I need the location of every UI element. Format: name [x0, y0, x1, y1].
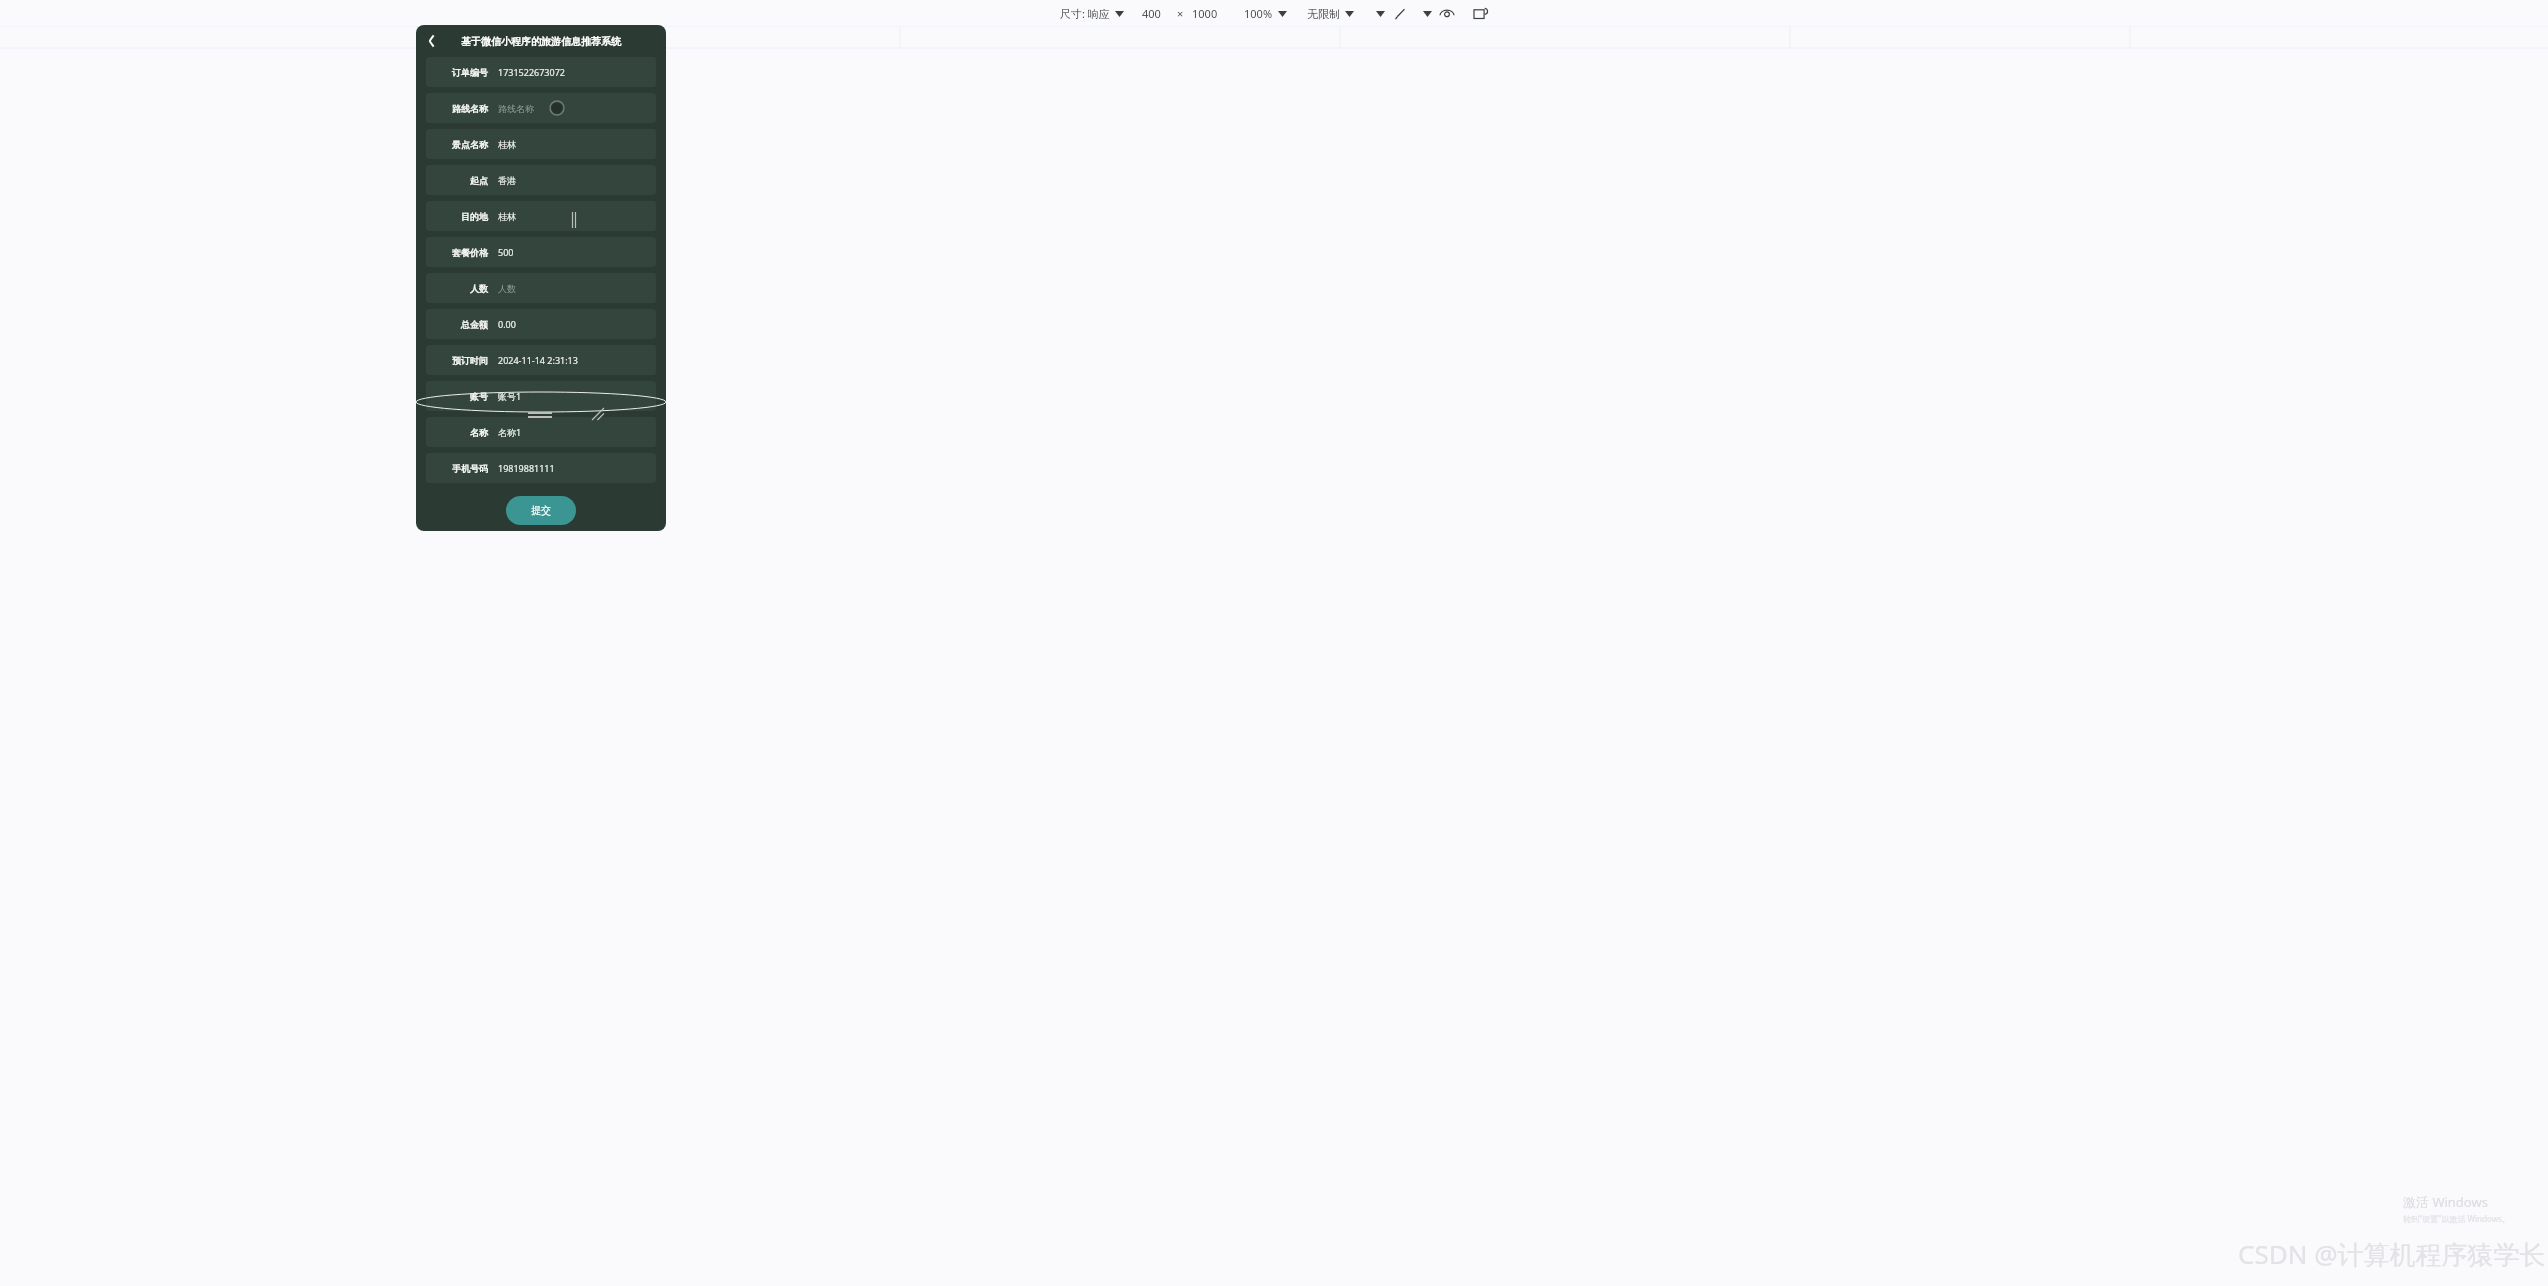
button[interactable]: 路线名称 — [426, 93, 656, 123]
staticText: 500 — [498, 246, 514, 258]
button[interactable]: 提交 — [506, 496, 576, 525]
staticText: 桂林 — [498, 139, 516, 150]
staticText: 1000 — [1192, 6, 1218, 21]
staticText: 0.00 — [498, 318, 516, 330]
button[interactable]: 名称 — [426, 417, 656, 447]
staticText: 目的地 — [430, 211, 488, 222]
staticText: 19819881111 — [498, 462, 555, 474]
staticText: 路线名称 — [430, 103, 488, 114]
button[interactable]: 套餐价格 — [426, 237, 656, 267]
staticText: 总金额 — [430, 319, 488, 330]
staticText: 2024-11-14 2:31:13 — [498, 354, 578, 366]
staticText: 预订时间 — [430, 355, 488, 366]
staticText: 转到"设置"以激活 Windows。 — [2403, 1213, 2510, 1224]
staticText: 手机号码 — [430, 463, 488, 474]
button[interactable]: 手机号码 — [426, 453, 656, 483]
button[interactable]: 总金额 — [426, 309, 656, 339]
staticText: 桂林 — [498, 211, 516, 222]
staticText: 激活 Windows — [2403, 1193, 2488, 1211]
button[interactable]: Back — [422, 31, 442, 51]
button[interactable]: 账号 — [426, 381, 656, 411]
button[interactable]: 景点名称 — [426, 129, 656, 159]
staticText: 名称 — [430, 427, 488, 438]
staticText: 账号 — [430, 391, 488, 402]
staticText: 香港 — [498, 175, 516, 186]
staticText: CSDN @计算机程序猿学长 — [2238, 1236, 2546, 1272]
staticText: 无限制 — [1307, 7, 1340, 21]
button[interactable]: 目的地 — [426, 201, 656, 231]
staticText: 账号1 — [498, 390, 522, 402]
staticText: 提交 — [531, 504, 551, 517]
staticText: 1731522673072 — [498, 66, 565, 78]
staticText: 人数 — [498, 283, 516, 294]
staticText: 人数 — [430, 283, 488, 294]
button[interactable]: 人数 — [426, 273, 656, 303]
staticText: 套餐价格 — [430, 247, 488, 258]
button[interactable]: 预订时间 — [426, 345, 656, 375]
staticText: 基于微信小程序的旅游信息推荐系统 — [461, 35, 621, 48]
staticText: 订单编号 — [430, 67, 488, 78]
button[interactable]: 起点 — [426, 165, 656, 195]
staticText: 起点 — [430, 175, 488, 186]
staticText: 400 — [1142, 6, 1161, 21]
button[interactable]: 订单编号 — [426, 57, 656, 87]
staticText: 路线名称 — [498, 103, 534, 114]
staticText: 名称1 — [498, 426, 522, 438]
staticText: 尺寸: 响应 — [1060, 6, 1110, 21]
staticText: 100% — [1244, 6, 1273, 21]
staticText: 景点名称 — [430, 139, 488, 150]
staticText: × — [1177, 6, 1184, 21]
